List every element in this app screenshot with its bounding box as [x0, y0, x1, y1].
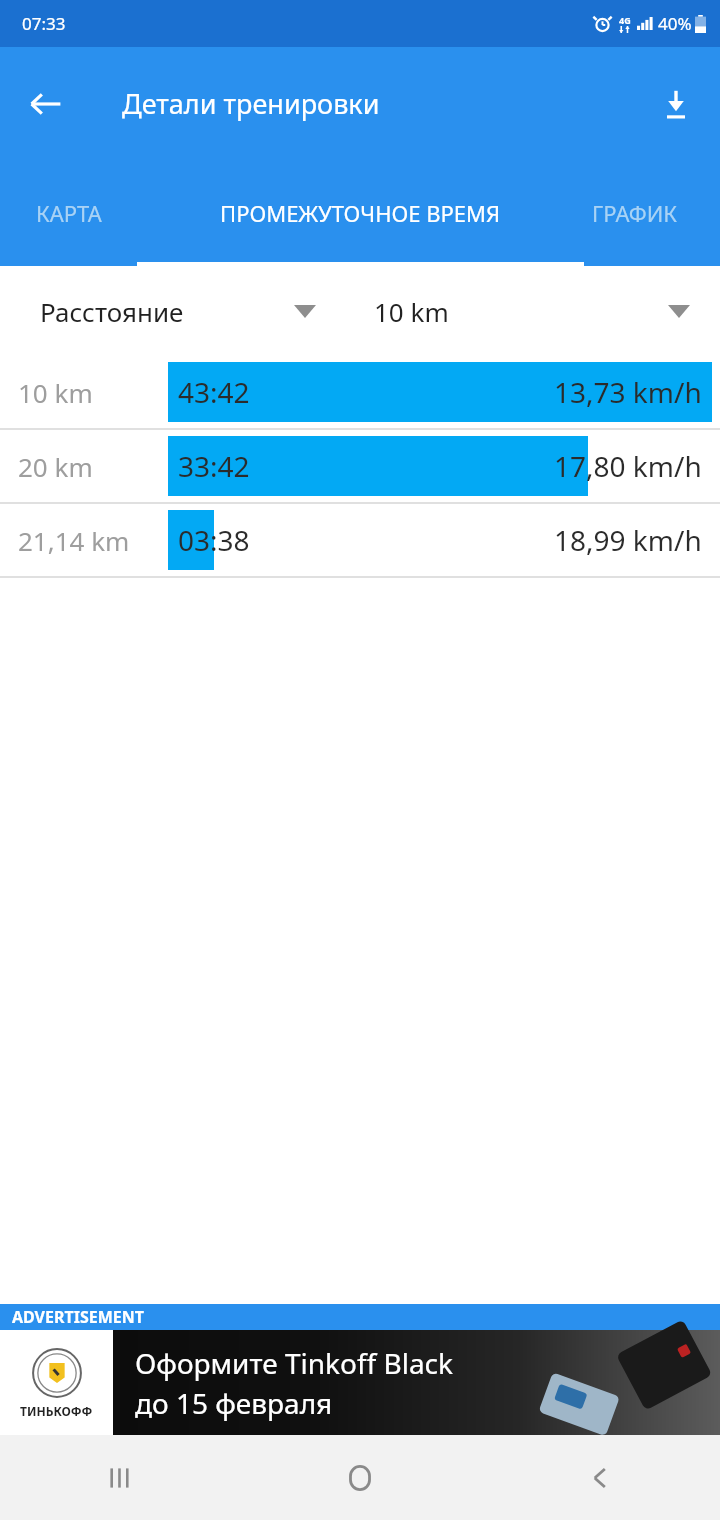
staticText: 17,80 km/h [554, 447, 702, 485]
staticText: Расстояние [40, 294, 184, 329]
staticText: 4G [619, 14, 631, 26]
staticText: ТИНЬКОФФ [20, 1403, 93, 1419]
staticText: Оформите Tinkoff Black [135, 1344, 453, 1382]
staticText: 43:42 [178, 373, 250, 411]
staticText: ГРАФИК [592, 198, 678, 228]
button[interactable]: Back [20, 78, 72, 130]
staticText: Детали тренировки [122, 85, 380, 122]
staticText: 33:42 [178, 447, 250, 485]
button[interactable]: ГРАФИК [584, 160, 720, 266]
staticText: 03:38 [178, 521, 250, 559]
staticText: КАРТА [36, 198, 102, 228]
button[interactable]: 10 km [360, 266, 720, 356]
staticText: 07:33 [22, 12, 66, 35]
button[interactable]: 10 km [0, 356, 720, 428]
button[interactable]: ТИНЬКОФФ [0, 1330, 720, 1435]
staticText: ПРОМЕЖУТОЧНОЕ ВРЕМЯ [220, 198, 501, 228]
button[interactable]: 20 km [0, 430, 720, 502]
staticText: 10 km [374, 294, 449, 329]
button[interactable]: Расстояние [0, 266, 360, 356]
staticText: до 15 февраля [135, 1384, 333, 1422]
staticText: 13,73 km/h [554, 373, 702, 411]
button[interactable]: ПРОМЕЖУТОЧНОЕ ВРЕМЯ [137, 160, 584, 266]
button[interactable]: Recents [0, 1435, 240, 1520]
staticText: 20 km [18, 449, 93, 484]
staticText: ADVERTISEMENT [12, 1306, 145, 1328]
button[interactable]: Back [480, 1435, 720, 1520]
button[interactable]: Download [648, 76, 704, 132]
button[interactable]: Home [240, 1435, 480, 1520]
button[interactable]: КАРТА [0, 160, 137, 266]
staticText: 40% [658, 12, 692, 35]
staticText: 10 km [18, 375, 93, 410]
staticText: 18,99 km/h [554, 521, 702, 559]
staticText: 21,14 km [18, 523, 130, 558]
button[interactable]: 21,14 km [0, 504, 720, 576]
